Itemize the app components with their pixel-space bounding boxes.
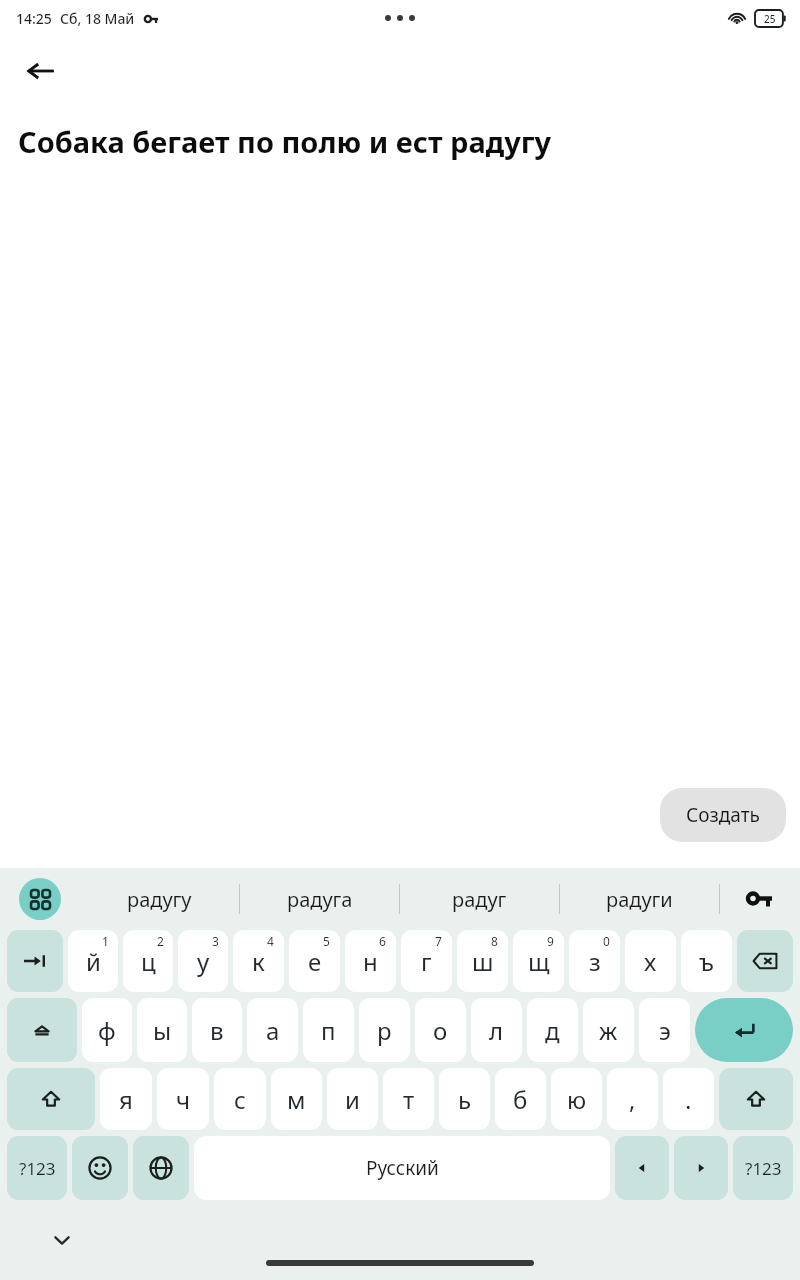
- button[interactable]: ?123: [7, 1136, 67, 1200]
- staticText: 0: [603, 933, 610, 949]
- staticText: л: [489, 1014, 504, 1047]
- button[interactable]: радуги: [560, 868, 719, 930]
- staticText: 2: [157, 933, 164, 949]
- staticText: Собака бегает по полю и ест радугу: [18, 122, 552, 161]
- button[interactable]: ж: [583, 998, 634, 1062]
- staticText: 14:25: [16, 9, 52, 28]
- button[interactable]: р: [359, 998, 410, 1062]
- staticText: ф: [98, 1014, 116, 1047]
- button[interactable]: г: [401, 930, 452, 992]
- staticText: у: [197, 945, 210, 978]
- staticText: ,: [629, 1083, 636, 1116]
- staticText: ?123: [745, 1157, 782, 1180]
- button[interactable]: о: [415, 998, 466, 1062]
- button[interactable]: Влево: [615, 1136, 669, 1200]
- button[interactable]: .: [663, 1068, 714, 1130]
- button[interactable]: Создать: [660, 788, 786, 842]
- button[interactable]: п: [303, 998, 354, 1062]
- staticText: и: [345, 1083, 360, 1116]
- staticText: радугу: [127, 886, 192, 913]
- staticText: щ: [528, 945, 550, 978]
- button[interactable]: Сменить язык: [133, 1136, 189, 1200]
- button[interactable]: ?123: [733, 1136, 793, 1200]
- button[interactable]: Русский: [194, 1136, 610, 1200]
- staticText: 7: [435, 933, 442, 949]
- staticText: н: [363, 945, 378, 978]
- button[interactable]: б: [495, 1068, 546, 1130]
- button[interactable]: ь: [439, 1068, 490, 1130]
- button[interactable]: Табуляция: [7, 930, 63, 992]
- staticText: с: [234, 1083, 246, 1116]
- button[interactable]: ш: [457, 930, 508, 992]
- button[interactable]: т: [383, 1068, 434, 1130]
- button[interactable]: ч: [157, 1068, 209, 1130]
- button[interactable]: я: [100, 1068, 152, 1130]
- button[interactable]: щ: [513, 930, 564, 992]
- button[interactable]: Эмодзи: [72, 1136, 128, 1200]
- button[interactable]: д: [527, 998, 578, 1062]
- button[interactable]: й: [68, 930, 118, 992]
- button[interactable]: ,: [607, 1068, 658, 1130]
- staticText: а: [266, 1014, 280, 1047]
- staticText: б: [513, 1083, 528, 1116]
- staticText: радуги: [606, 886, 673, 913]
- button[interactable]: Пароли: [736, 876, 782, 922]
- staticText: 4: [267, 933, 274, 949]
- button[interactable]: э: [639, 998, 690, 1062]
- staticText: о: [433, 1014, 448, 1047]
- staticText: е: [308, 945, 322, 978]
- staticText: ш: [472, 945, 494, 978]
- staticText: х: [644, 945, 657, 978]
- button[interactable]: з: [569, 930, 620, 992]
- button[interactable]: х: [625, 930, 676, 992]
- button[interactable]: ю: [551, 1068, 602, 1130]
- staticText: я: [119, 1083, 133, 1116]
- staticText: р: [377, 1014, 392, 1047]
- button[interactable]: Вправо: [674, 1136, 728, 1200]
- staticText: 3: [212, 933, 219, 949]
- button[interactable]: Shift: [7, 1068, 95, 1130]
- staticText: ?123: [19, 1157, 56, 1180]
- staticText: ж: [599, 1014, 618, 1047]
- button[interactable]: а: [247, 998, 298, 1062]
- staticText: радуг: [452, 886, 507, 913]
- button[interactable]: и: [327, 1068, 378, 1130]
- button[interactable]: ц: [123, 930, 173, 992]
- button[interactable]: в: [192, 998, 242, 1062]
- button[interactable]: радугу: [80, 868, 239, 930]
- staticText: д: [545, 1014, 560, 1047]
- staticText: ц: [141, 945, 156, 978]
- button[interactable]: Удалить: [737, 930, 793, 992]
- button[interactable]: радуга: [240, 868, 399, 930]
- staticText: п: [321, 1014, 336, 1047]
- staticText: 9: [547, 933, 554, 949]
- button[interactable]: Shift: [719, 1068, 793, 1130]
- button[interactable]: ф: [82, 998, 132, 1062]
- staticText: т: [403, 1083, 415, 1116]
- button[interactable]: ъ: [681, 930, 732, 992]
- staticText: .: [685, 1083, 692, 1116]
- button[interactable]: с: [214, 1068, 266, 1130]
- staticText: 1: [102, 933, 109, 949]
- button[interactable]: н: [345, 930, 396, 992]
- button[interactable]: е: [289, 930, 340, 992]
- button[interactable]: л: [471, 998, 522, 1062]
- staticText: радуга: [287, 886, 353, 913]
- staticText: э: [659, 1014, 671, 1047]
- button[interactable]: Скрыть клавиатуру: [40, 1218, 84, 1262]
- button[interactable]: Ввод: [695, 998, 793, 1062]
- button[interactable]: Меню клавиатуры: [19, 878, 61, 920]
- staticText: м: [287, 1083, 306, 1116]
- button[interactable]: радуг: [400, 868, 559, 930]
- staticText: ь: [458, 1083, 472, 1116]
- staticText: г: [421, 945, 432, 978]
- button[interactable]: к: [233, 930, 284, 992]
- staticText: ю: [567, 1083, 587, 1116]
- button[interactable]: у: [178, 930, 228, 992]
- button[interactable]: м: [271, 1068, 322, 1130]
- button[interactable]: ы: [137, 998, 187, 1062]
- button[interactable]: Caps Lock: [7, 998, 77, 1062]
- staticText: й: [86, 945, 101, 978]
- button[interactable]: Назад: [12, 42, 70, 100]
- staticText: 8: [491, 933, 498, 949]
